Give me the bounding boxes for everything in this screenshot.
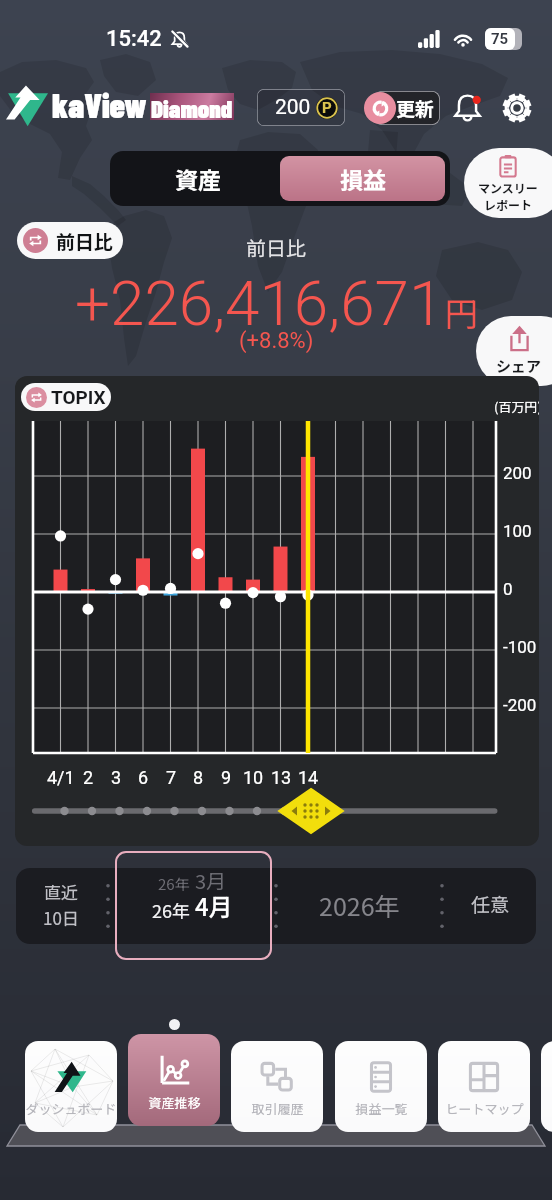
staticText: 損益一覧: [355, 1099, 408, 1118]
staticText: 損益: [340, 162, 386, 195]
button[interactable]: 取引履歴: [231, 1041, 323, 1132]
staticText: 4月: [195, 888, 233, 923]
button[interactable]: マンスリー: [464, 148, 552, 218]
button[interactable]: 損益: [280, 156, 445, 201]
staticText: 9: [221, 767, 232, 788]
staticText: 3: [111, 767, 122, 788]
staticText: 前日比: [246, 233, 306, 262]
button[interactable]: 損益一覧: [335, 1041, 427, 1132]
staticText: 15:42: [106, 26, 162, 52]
staticText: 資産: [175, 162, 221, 195]
button[interactable]: 資産: [115, 156, 280, 201]
staticText: 200: [503, 463, 532, 483]
staticText: マンスリー: [478, 179, 538, 196]
staticText: kaView: [52, 84, 147, 125]
staticText: 3月: [195, 868, 227, 895]
button[interactable]: 資産推移: [128, 1034, 220, 1126]
staticText: レポート: [484, 196, 533, 213]
button[interactable]: 2026年: [278, 868, 440, 944]
staticText: TOPIX: [51, 386, 106, 408]
staticText: 任意: [471, 890, 510, 918]
staticText: 円: [445, 288, 478, 336]
staticText: 前日比: [56, 227, 114, 255]
staticText: 14: [298, 767, 319, 788]
button[interactable]: TOPIX: [21, 383, 111, 411]
staticText: 2026年: [319, 887, 400, 923]
staticText: +226,416,671: [75, 267, 444, 340]
staticText: 75: [491, 30, 509, 48]
button[interactable]: 前日比: [17, 222, 123, 259]
button[interactable]: 200: [257, 89, 345, 126]
button[interactable]: 直近: [16, 868, 106, 944]
button[interactable]: 更新: [364, 90, 440, 126]
staticText: P: [322, 99, 332, 117]
staticText: 2: [83, 767, 94, 788]
staticText: 7: [166, 767, 177, 788]
staticText: -100: [503, 637, 537, 657]
staticText: 6: [138, 767, 149, 788]
staticText: 200: [275, 95, 311, 120]
staticText: -200: [503, 695, 537, 715]
button[interactable]: 26年: [110, 868, 274, 944]
staticText: 8: [193, 767, 204, 788]
staticText: 4/1: [47, 767, 75, 788]
staticText: 10: [243, 767, 264, 788]
button[interactable]: 任意: [444, 868, 536, 944]
button[interactable]: Settings: [497, 88, 537, 128]
button[interactable]: Notifications: [447, 88, 487, 128]
staticText: 取引履歴: [251, 1099, 304, 1118]
staticText: (+8.8%): [239, 328, 314, 354]
staticText: 直近: [44, 879, 78, 904]
button[interactable]: シェア: [476, 316, 552, 386]
staticText: 資産推移: [148, 1093, 201, 1112]
staticText: 10日: [43, 905, 79, 930]
staticText: 13: [271, 767, 292, 788]
staticText: ヒートマップ: [445, 1099, 524, 1118]
staticText: 26年: [158, 873, 190, 895]
staticText: ダッシュボード: [25, 1099, 117, 1118]
staticText: 0: [503, 579, 513, 599]
button[interactable]: ダッシュボード: [25, 1041, 117, 1132]
staticText: 更新: [396, 94, 435, 122]
staticText: 100: [503, 521, 532, 541]
staticText: シェア: [496, 355, 542, 377]
staticText: Diamond: [151, 93, 233, 120]
staticText: (百万円): [494, 397, 539, 416]
staticText: 26年: [152, 897, 190, 923]
button[interactable]: ヒートマップ: [438, 1041, 530, 1132]
button[interactable]: ポ: [541, 1041, 552, 1132]
